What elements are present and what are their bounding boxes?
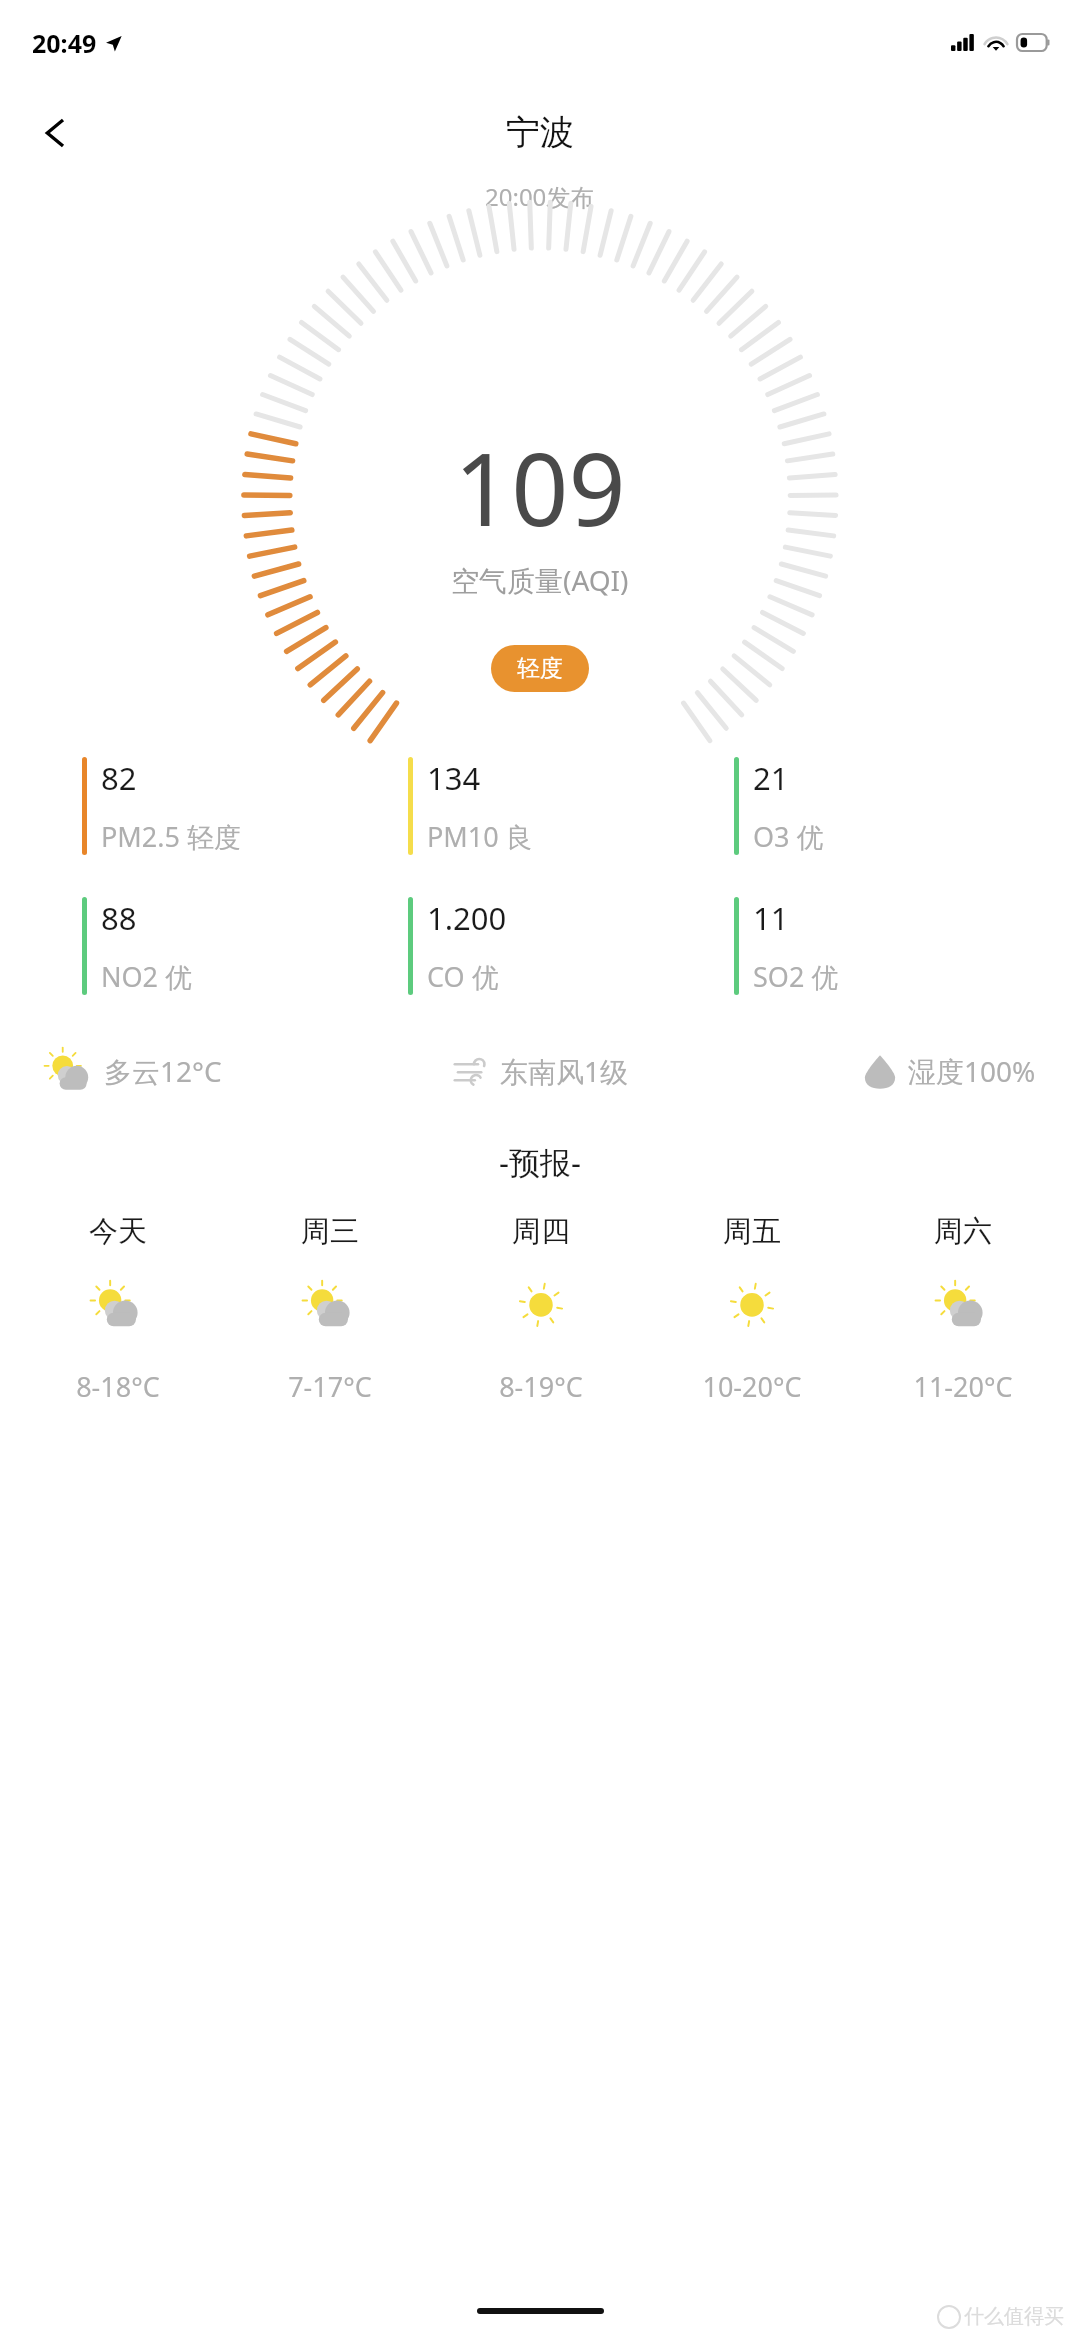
staticText: 11-20°C (913, 1368, 1013, 1405)
staticText: O3 优 (753, 818, 824, 855)
button[interactable]: Back (22, 100, 88, 166)
button[interactable]: 134 (408, 757, 734, 855)
staticText: 空气质量(AQI) (451, 561, 629, 599)
button[interactable]: 82 (82, 757, 408, 855)
button[interactable]: 湿度100% (705, 1052, 1036, 1090)
staticText: 周三 (301, 1213, 359, 1250)
button[interactable]: 周五 (646, 1213, 857, 1405)
button[interactable]: 东南风1级 (374, 1051, 705, 1091)
staticText: 88 (101, 897, 137, 939)
staticText: 134 (427, 757, 481, 799)
staticText: 21 (753, 757, 789, 799)
staticText: NO2 优 (101, 958, 193, 995)
staticText: 7-17°C (288, 1368, 372, 1405)
staticText: 8-19°C (499, 1368, 583, 1405)
button[interactable]: 周三 (224, 1213, 435, 1405)
button[interactable]: 21 (734, 757, 1060, 855)
staticText: 多云12°C (104, 1052, 222, 1090)
staticText: -预报- (499, 1141, 581, 1183)
button[interactable]: 11 (734, 897, 1060, 995)
staticText: 今天 (89, 1213, 147, 1250)
staticText: PM2.5 轻度 (101, 818, 241, 855)
staticText: 什么值得买 (964, 2304, 1064, 2329)
button[interactable]: 周六 (857, 1213, 1068, 1405)
staticText: 109 (454, 419, 626, 555)
staticText: 20:49 (32, 26, 97, 60)
staticText: 周四 (512, 1213, 570, 1250)
staticText: 东南风1级 (500, 1052, 629, 1090)
button[interactable]: 多云12°C (44, 1045, 374, 1097)
staticText: CO 优 (427, 958, 499, 995)
staticText: 周六 (934, 1213, 992, 1250)
button[interactable]: 周四 (435, 1213, 646, 1405)
staticText: 10-20°C (702, 1368, 802, 1405)
button[interactable]: 轻度 (491, 645, 589, 692)
staticText: 周五 (723, 1213, 781, 1250)
staticText: 1.200 (427, 897, 507, 939)
staticText: 轻度 (517, 654, 563, 683)
staticText: SO2 优 (753, 958, 839, 995)
button[interactable]: 今天 (12, 1213, 224, 1405)
staticText: 82 (101, 757, 137, 799)
staticText: 湿度100% (908, 1052, 1036, 1090)
button[interactable]: 88 (82, 897, 408, 995)
staticText: 11 (753, 897, 789, 939)
staticText: PM10 良 (427, 818, 533, 855)
staticText: 8-18°C (76, 1368, 160, 1405)
staticText: 20:00发布 (485, 180, 595, 213)
staticText: 宁波 (506, 111, 574, 154)
button[interactable]: 1.200 (408, 897, 734, 995)
